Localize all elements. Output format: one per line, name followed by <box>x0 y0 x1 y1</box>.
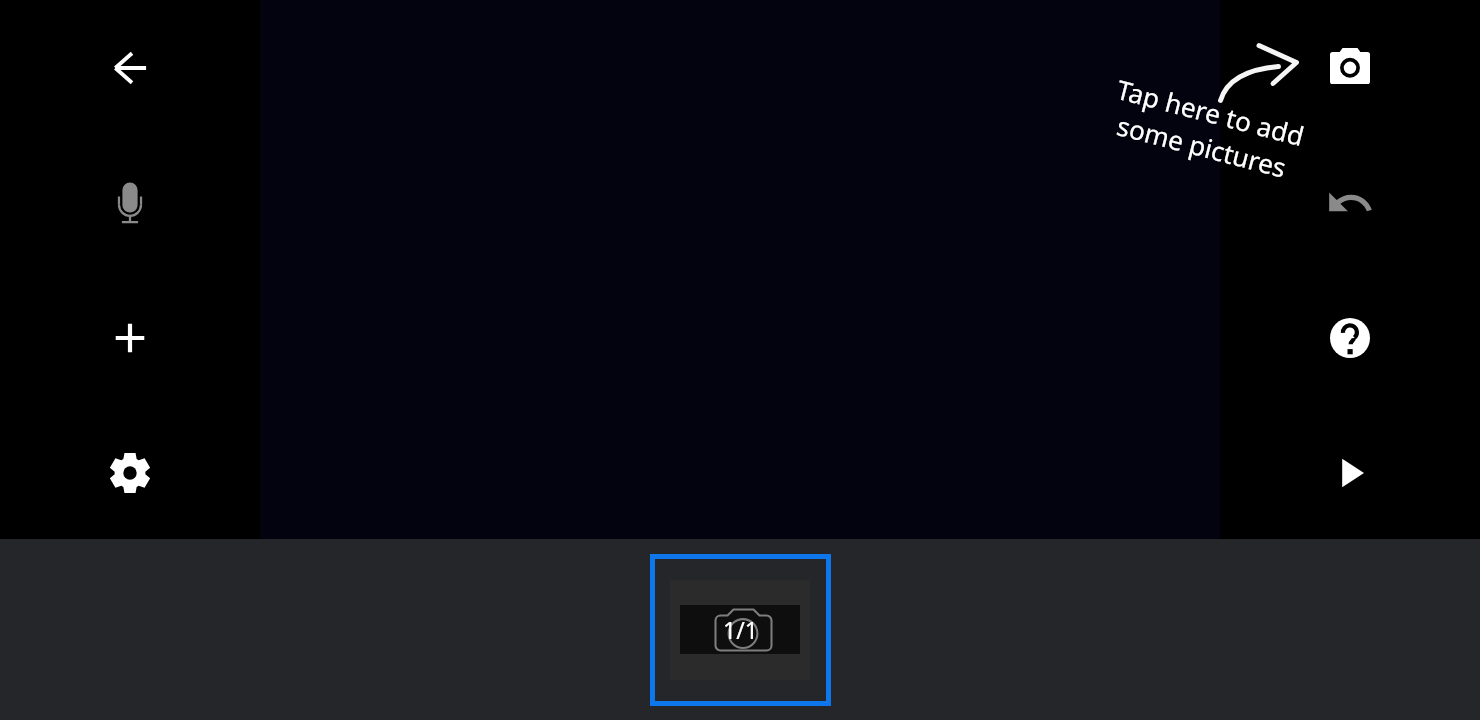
button[interactable]: 1/1 <box>650 554 831 706</box>
button[interactable]: Help <box>1312 300 1388 376</box>
button[interactable]: Add media <box>92 300 168 376</box>
button[interactable]: Play <box>1314 435 1390 511</box>
staticText: 1/1 <box>723 614 758 645</box>
button[interactable]: Undo <box>1312 165 1388 241</box>
button[interactable]: Back <box>92 30 168 106</box>
button[interactable]: Camera <box>1312 28 1388 104</box>
button[interactable]: Settings <box>92 435 168 511</box>
button[interactable]: Record narration <box>92 165 168 241</box>
staticText: Tap here to add some pictures <box>1104 71 1308 188</box>
